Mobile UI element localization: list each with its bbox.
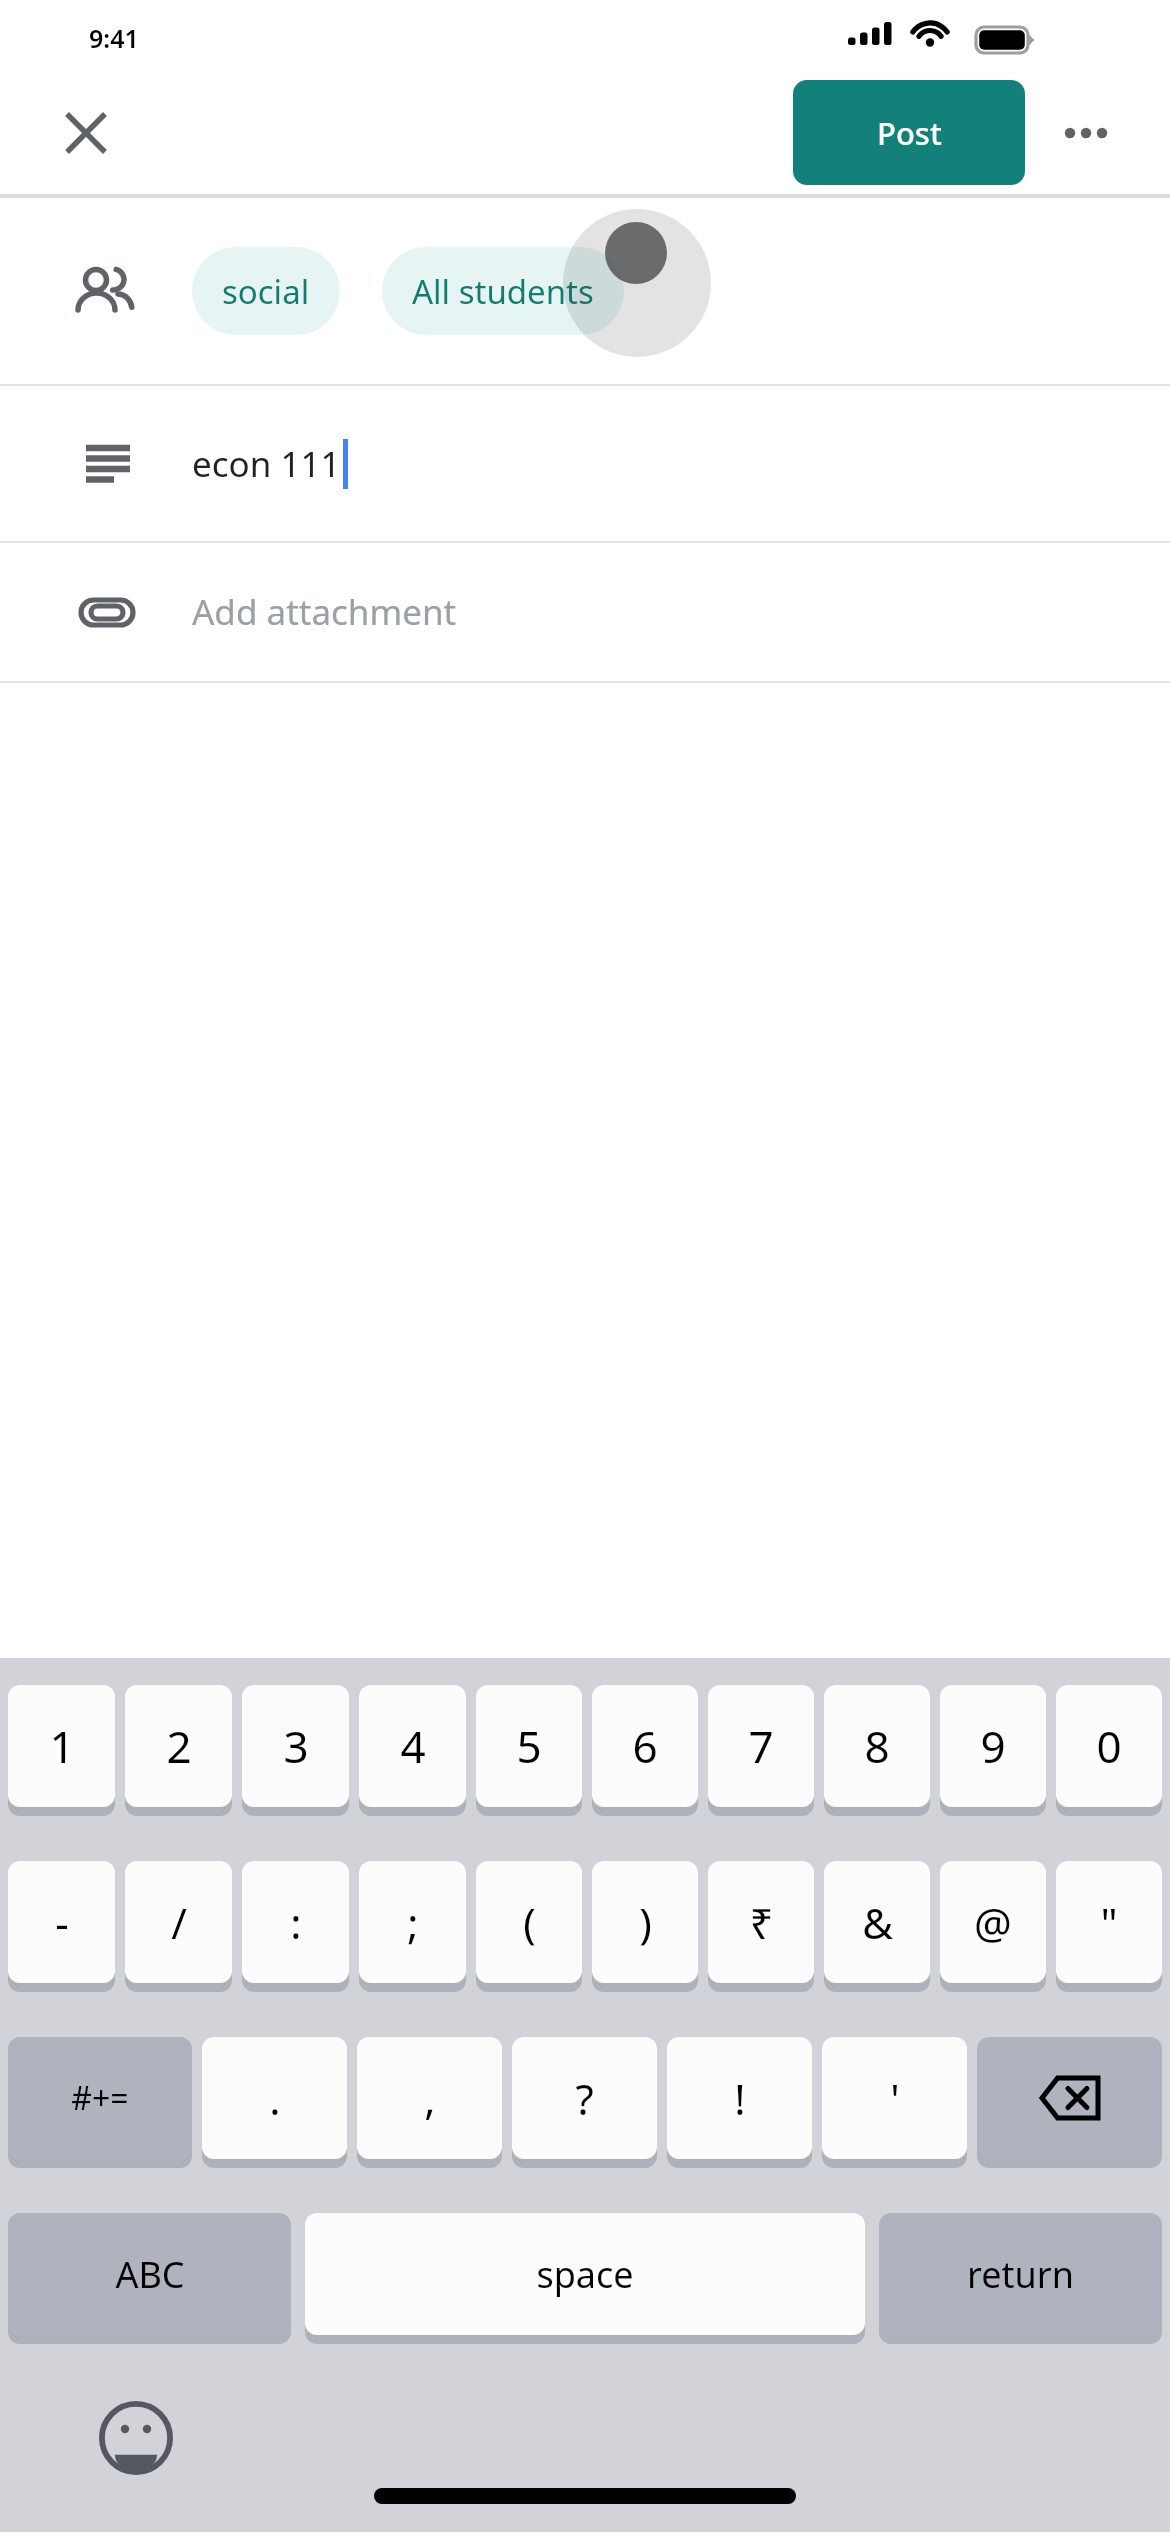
button[interactable]: ! (667, 2037, 812, 2159)
staticText: return (967, 2250, 1074, 2299)
staticText: ABC (115, 2250, 185, 2299)
staticText: . (269, 2070, 281, 2127)
staticText: : (290, 1894, 302, 1951)
staticText: ) (639, 1894, 652, 1951)
button[interactable]: space (305, 2213, 865, 2335)
button[interactable]: ( (476, 1861, 582, 1983)
button[interactable]: , (357, 2037, 502, 2159)
staticText: 9:41 (89, 21, 139, 55)
staticText: 9 (980, 1716, 1006, 1776)
button[interactable]: 3 (242, 1685, 349, 1807)
button[interactable]: 1 (8, 1685, 115, 1807)
staticText: & (862, 1894, 893, 1951)
staticText: / (171, 1894, 187, 1951)
button[interactable]: Post (793, 80, 1025, 185)
button[interactable]: Backspace (977, 2037, 1162, 2159)
button[interactable]: 2 (125, 1685, 232, 1807)
button[interactable]: 8 (824, 1685, 930, 1807)
button[interactable]: Close (48, 95, 123, 170)
button[interactable]: : (242, 1861, 349, 1983)
staticText: econ 111 (192, 440, 341, 488)
staticText: ( (523, 1894, 536, 1951)
staticText: Post (877, 112, 942, 154)
button[interactable]: All students (382, 247, 624, 335)
staticText: 3 (283, 1716, 309, 1776)
button[interactable]: 6 (592, 1685, 698, 1807)
button[interactable]: ' (822, 2037, 967, 2159)
staticText: 5 (516, 1716, 542, 1776)
staticText: 6 (632, 1716, 658, 1776)
button[interactable]: ? (512, 2037, 657, 2159)
button[interactable]: 5 (476, 1685, 582, 1807)
button[interactable]: social (0, 198, 1170, 384)
button[interactable]: - (8, 1861, 115, 1983)
staticText: #+= (71, 2076, 129, 2120)
staticText: 4 (400, 1716, 426, 1776)
button[interactable]: / (125, 1861, 232, 1983)
button[interactable]: @ (940, 1861, 1046, 1983)
staticText: 1 (49, 1716, 75, 1776)
staticText: ! (734, 2070, 746, 2127)
staticText: space (536, 2250, 634, 2299)
button[interactable]: 7 (708, 1685, 814, 1807)
staticText: " (1100, 1894, 1118, 1951)
staticText: 7 (748, 1716, 774, 1776)
button[interactable]: return (879, 2213, 1162, 2335)
staticText: - (55, 1894, 69, 1951)
button[interactable]: & (824, 1861, 930, 1983)
staticText: 8 (864, 1716, 890, 1776)
staticText: social (222, 269, 310, 314)
button[interactable]: More options (1043, 90, 1129, 176)
button[interactable]: 9 (940, 1685, 1046, 1807)
button[interactable]: Emoji keyboard (88, 2390, 184, 2486)
staticText: @ (974, 1894, 1012, 1951)
staticText: , (424, 2070, 436, 2127)
button[interactable]: social (192, 247, 340, 335)
staticText: All students (412, 269, 594, 314)
button[interactable]: Add attachment (0, 543, 1170, 681)
staticText: ; (407, 1894, 419, 1951)
button[interactable]: . (202, 2037, 347, 2159)
staticText: ₹ (749, 1894, 774, 1951)
button[interactable]: ABC (8, 2213, 291, 2335)
button[interactable]: 4 (359, 1685, 466, 1807)
button[interactable]: econ 111 (0, 386, 1170, 541)
staticText: 0 (1096, 1716, 1122, 1776)
button[interactable]: ₹ (708, 1861, 814, 1983)
staticText: 2 (166, 1716, 192, 1776)
button[interactable]: 0 (1056, 1685, 1162, 1807)
staticText: ' (890, 2070, 900, 2127)
staticText: ? (575, 2070, 594, 2127)
button[interactable]: ; (359, 1861, 466, 1983)
staticText: Add attachment (192, 588, 457, 636)
button[interactable]: " (1056, 1861, 1162, 1983)
button[interactable]: #+= (8, 2037, 192, 2159)
button[interactable]: ) (592, 1861, 698, 1983)
